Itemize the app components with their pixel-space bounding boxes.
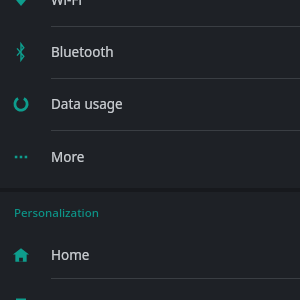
staticText: Home: [51, 246, 90, 264]
button[interactable]: Bluetooth: [0, 26, 300, 78]
button[interactable]: Home: [0, 229, 300, 281]
staticText: Wi-Fi: [51, 0, 82, 9]
button[interactable]: Wi-Fi: [0, 0, 300, 26]
button[interactable]: Display settings: [0, 278, 300, 300]
staticText: Bluetooth: [51, 43, 114, 61]
staticText: More: [51, 148, 85, 166]
staticText: Data usage: [51, 95, 123, 113]
button[interactable]: More: [0, 131, 300, 183]
button[interactable]: Data usage: [0, 78, 300, 130]
staticText: Personalization: [14, 205, 99, 221]
